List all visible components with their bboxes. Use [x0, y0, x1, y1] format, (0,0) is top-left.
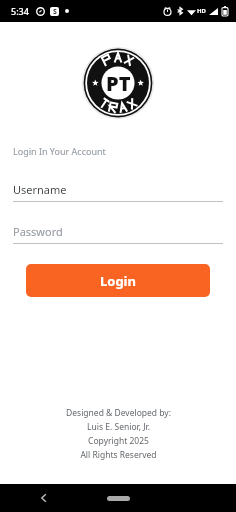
button[interactable]: Back — [34, 488, 54, 508]
button[interactable]: Username — [13, 182, 223, 202]
button[interactable]: Home — [100, 490, 136, 506]
button[interactable]: Password — [13, 224, 223, 244]
staticText: 5:34 — [11, 5, 29, 17]
staticText: Luis E. Senior, Jr. — [87, 421, 150, 433]
staticText: Password — [13, 224, 63, 239]
staticText: Username — [13, 182, 67, 197]
staticText: All Rights Reserved — [80, 449, 157, 461]
staticText: PT — [106, 70, 131, 97]
staticText: HD — [197, 7, 206, 15]
staticText: Login — [100, 272, 136, 290]
staticText: S — [53, 7, 57, 16]
staticText: Login In Your Account — [13, 145, 106, 157]
button[interactable]: Login — [26, 264, 210, 297]
staticText: Copyright 2025 — [88, 435, 149, 447]
staticText: Designed & Developed by: — [66, 407, 171, 419]
